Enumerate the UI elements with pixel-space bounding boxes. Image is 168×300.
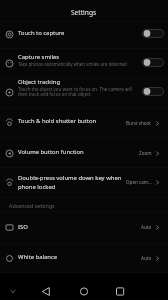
staticText: Auto <box>141 255 152 261</box>
staticText: Touch to capture <box>18 29 65 37</box>
button[interactable]: Home <box>66 273 102 300</box>
staticText: Volume button function <box>18 148 84 156</box>
button[interactable]: Toggle <box>0 48 168 78</box>
button[interactable]: Open cam... <box>0 167 168 197</box>
button[interactable]: Zoom <box>0 138 168 168</box>
staticText: Settings <box>71 8 97 17</box>
staticText: Open cam... <box>126 179 152 185</box>
button[interactable]: Auto <box>0 243 168 273</box>
staticText: Object tracking <box>18 78 61 86</box>
button[interactable]: Toggle <box>142 29 164 38</box>
staticText: Touch & hold shutter button <box>18 117 97 125</box>
button[interactable]: Burst shoot <box>0 107 168 138</box>
button[interactable]: Recent apps <box>102 273 138 300</box>
staticText: Burst shoot <box>126 120 152 126</box>
button[interactable]: Hide navigation bar <box>0 273 26 300</box>
staticText: ISO <box>18 223 28 231</box>
button[interactable]: Back <box>26 273 66 300</box>
button[interactable]: Toggle <box>0 78 168 107</box>
staticText: White balance <box>18 253 58 261</box>
staticText: Zoom <box>139 150 152 156</box>
staticText: Advanced settings <box>9 202 55 209</box>
staticText: Take photos automatically when smiles ar… <box>18 61 127 67</box>
button[interactable]: Toggle <box>142 58 164 67</box>
staticText: Auto <box>141 224 152 230</box>
staticText: Double-press volume down key when phone … <box>18 174 140 191</box>
button[interactable]: Auto <box>0 211 168 243</box>
button[interactable]: Toggle <box>0 21 168 48</box>
staticText: Capture smiles <box>18 53 60 61</box>
staticText: Touch the object you want to focus on. T… <box>18 86 140 97</box>
button[interactable]: Toggle <box>142 87 164 96</box>
